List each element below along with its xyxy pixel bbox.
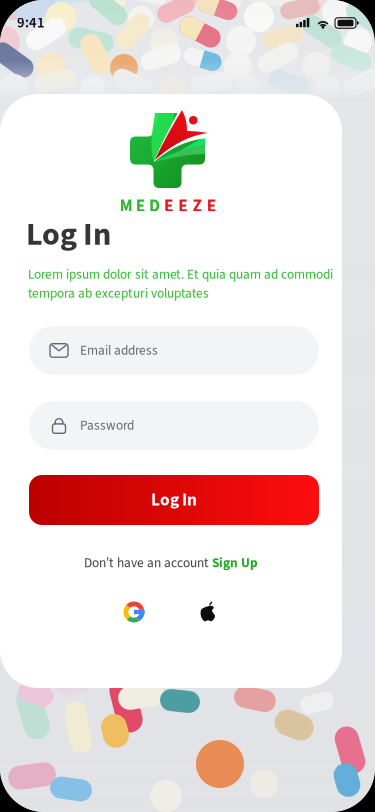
staticText: E [178, 194, 187, 218]
staticText: 9:41 [17, 13, 45, 33]
staticText: Password [80, 416, 134, 435]
button[interactable]: Continue with Google [111, 589, 157, 635]
staticText: Log In [26, 212, 111, 258]
staticText: D [149, 194, 160, 218]
staticText: Email address [80, 341, 158, 360]
staticText: Z [192, 194, 201, 218]
button[interactable]: Continue with Apple [185, 589, 231, 635]
staticText: Log In [151, 488, 197, 512]
staticText: Sign Up [212, 553, 258, 572]
button[interactable]: Sign Up [212, 553, 258, 572]
staticText: M [119, 194, 132, 218]
staticText: E [164, 194, 173, 218]
button[interactable]: Log In [29, 475, 319, 525]
staticText: E [207, 194, 216, 218]
staticText: Lorem ipsum dolor sit amet. Et quia quam… [28, 265, 333, 303]
staticText: E [136, 194, 145, 218]
staticText: Don't have an account [84, 553, 212, 572]
